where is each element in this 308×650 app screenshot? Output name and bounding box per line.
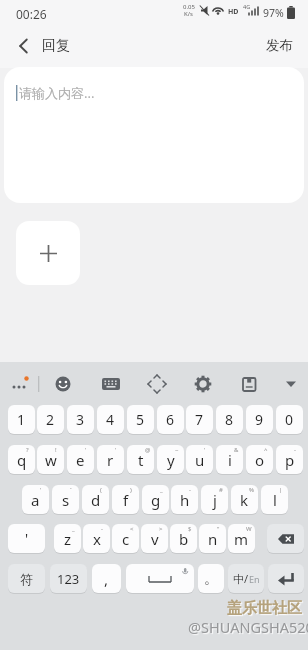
button[interactable] [16, 221, 80, 285]
staticText: x [93, 529, 101, 549]
button[interactable]: t [127, 445, 154, 474]
staticText: @SHUANGSHA520 [188, 617, 308, 637]
button[interactable]: y [157, 445, 184, 474]
staticText: ' [25, 529, 29, 548]
staticText: En [249, 573, 260, 585]
button[interactable]: j [201, 485, 228, 514]
staticText: 123 [57, 570, 80, 588]
staticText: ) [130, 486, 132, 494]
button[interactable]: h [171, 485, 198, 514]
staticText: ' [115, 446, 117, 454]
button[interactable] [10, 33, 38, 59]
staticText: " [217, 525, 220, 533]
staticText: j [213, 490, 217, 510]
staticText: HD [228, 7, 239, 17]
button[interactable]: 7 [186, 405, 213, 434]
button[interactable]: ' [8, 524, 45, 553]
button[interactable]: 2 [37, 405, 64, 434]
staticText: u [195, 450, 205, 470]
staticText: r [107, 450, 114, 470]
staticText: < [130, 525, 134, 533]
button[interactable] [142, 368, 172, 400]
button[interactable] [278, 368, 304, 400]
button[interactable]: q [8, 445, 35, 474]
button[interactable]: p [276, 445, 303, 474]
staticText: ` [70, 486, 72, 494]
staticText: 9 [255, 410, 264, 429]
staticText: ! [55, 446, 57, 454]
button[interactable]: u [186, 445, 213, 474]
staticText: , [104, 569, 109, 589]
button[interactable]: g [142, 485, 169, 514]
staticText: @ [145, 446, 151, 454]
button[interactable]: w [37, 445, 64, 474]
button[interactable]: m [228, 524, 255, 553]
staticText: c [122, 529, 130, 549]
button[interactable]: , [92, 564, 121, 593]
staticText: 4 [106, 410, 115, 429]
button[interactable]: x [83, 524, 110, 553]
button[interactable] [267, 524, 304, 553]
button[interactable]: r [97, 445, 124, 474]
button[interactable]: 8 [216, 405, 243, 434]
button[interactable]: 发布 [256, 28, 302, 62]
button[interactable]: 。 [198, 564, 224, 593]
staticText: q [17, 450, 27, 470]
staticText: a [31, 490, 40, 510]
button[interactable]: i [216, 445, 243, 474]
button[interactable]: 符 [8, 564, 45, 593]
button[interactable]: 4 [97, 405, 124, 434]
button[interactable]: e [67, 445, 94, 474]
staticText: - [294, 446, 296, 454]
button[interactable]: 123 [50, 564, 87, 593]
button[interactable]: s [52, 485, 79, 514]
button[interactable]: d [82, 485, 109, 514]
button[interactable]: z [54, 524, 81, 553]
button[interactable]: 3 [67, 405, 94, 434]
button[interactable]: a [22, 485, 49, 514]
button[interactable]: 0 [276, 405, 303, 434]
button[interactable] [96, 368, 126, 400]
staticText: 97% [263, 6, 284, 20]
button[interactable] [234, 368, 264, 400]
staticText: ^ [264, 446, 268, 454]
button[interactable]: l [261, 485, 288, 514]
button[interactable] [188, 368, 218, 400]
staticText: 。 [204, 570, 218, 588]
button[interactable] [48, 368, 78, 400]
staticText: v [151, 529, 159, 549]
button[interactable]: v [141, 524, 168, 553]
button[interactable]: f [112, 485, 139, 514]
button[interactable]: b [170, 524, 197, 553]
staticText: w [45, 450, 57, 470]
button[interactable]: k [231, 485, 258, 514]
staticText: p [285, 450, 295, 470]
button[interactable] [268, 564, 304, 593]
button[interactable]: 5 [127, 405, 154, 434]
staticText: 00:26 [16, 6, 47, 22]
staticText: _ [160, 486, 163, 494]
button[interactable]: 中 [228, 564, 264, 593]
button[interactable] [4, 368, 38, 400]
staticText: 符 [20, 571, 33, 587]
staticText: 4G [243, 3, 251, 10]
button[interactable]: n [199, 524, 226, 553]
button[interactable]: 9 [246, 405, 273, 434]
button[interactable]: 6 [157, 405, 184, 434]
staticText: & [234, 446, 239, 454]
staticText: ~ [175, 446, 179, 454]
button[interactable] [126, 564, 194, 593]
staticText: 1 [17, 410, 26, 429]
staticText: i [228, 450, 232, 470]
staticText: | [279, 486, 283, 494]
button[interactable]: 请输入内容... [4, 67, 304, 203]
staticText: f [123, 490, 129, 510]
button[interactable]: o [246, 445, 273, 474]
button[interactable]: c [112, 524, 139, 553]
staticText: ' [40, 486, 42, 494]
staticText: K/s [184, 10, 193, 18]
button[interactable]: 1 [8, 405, 35, 434]
staticText: n [208, 529, 218, 549]
staticText: / [244, 571, 249, 586]
staticText: z [64, 529, 72, 549]
